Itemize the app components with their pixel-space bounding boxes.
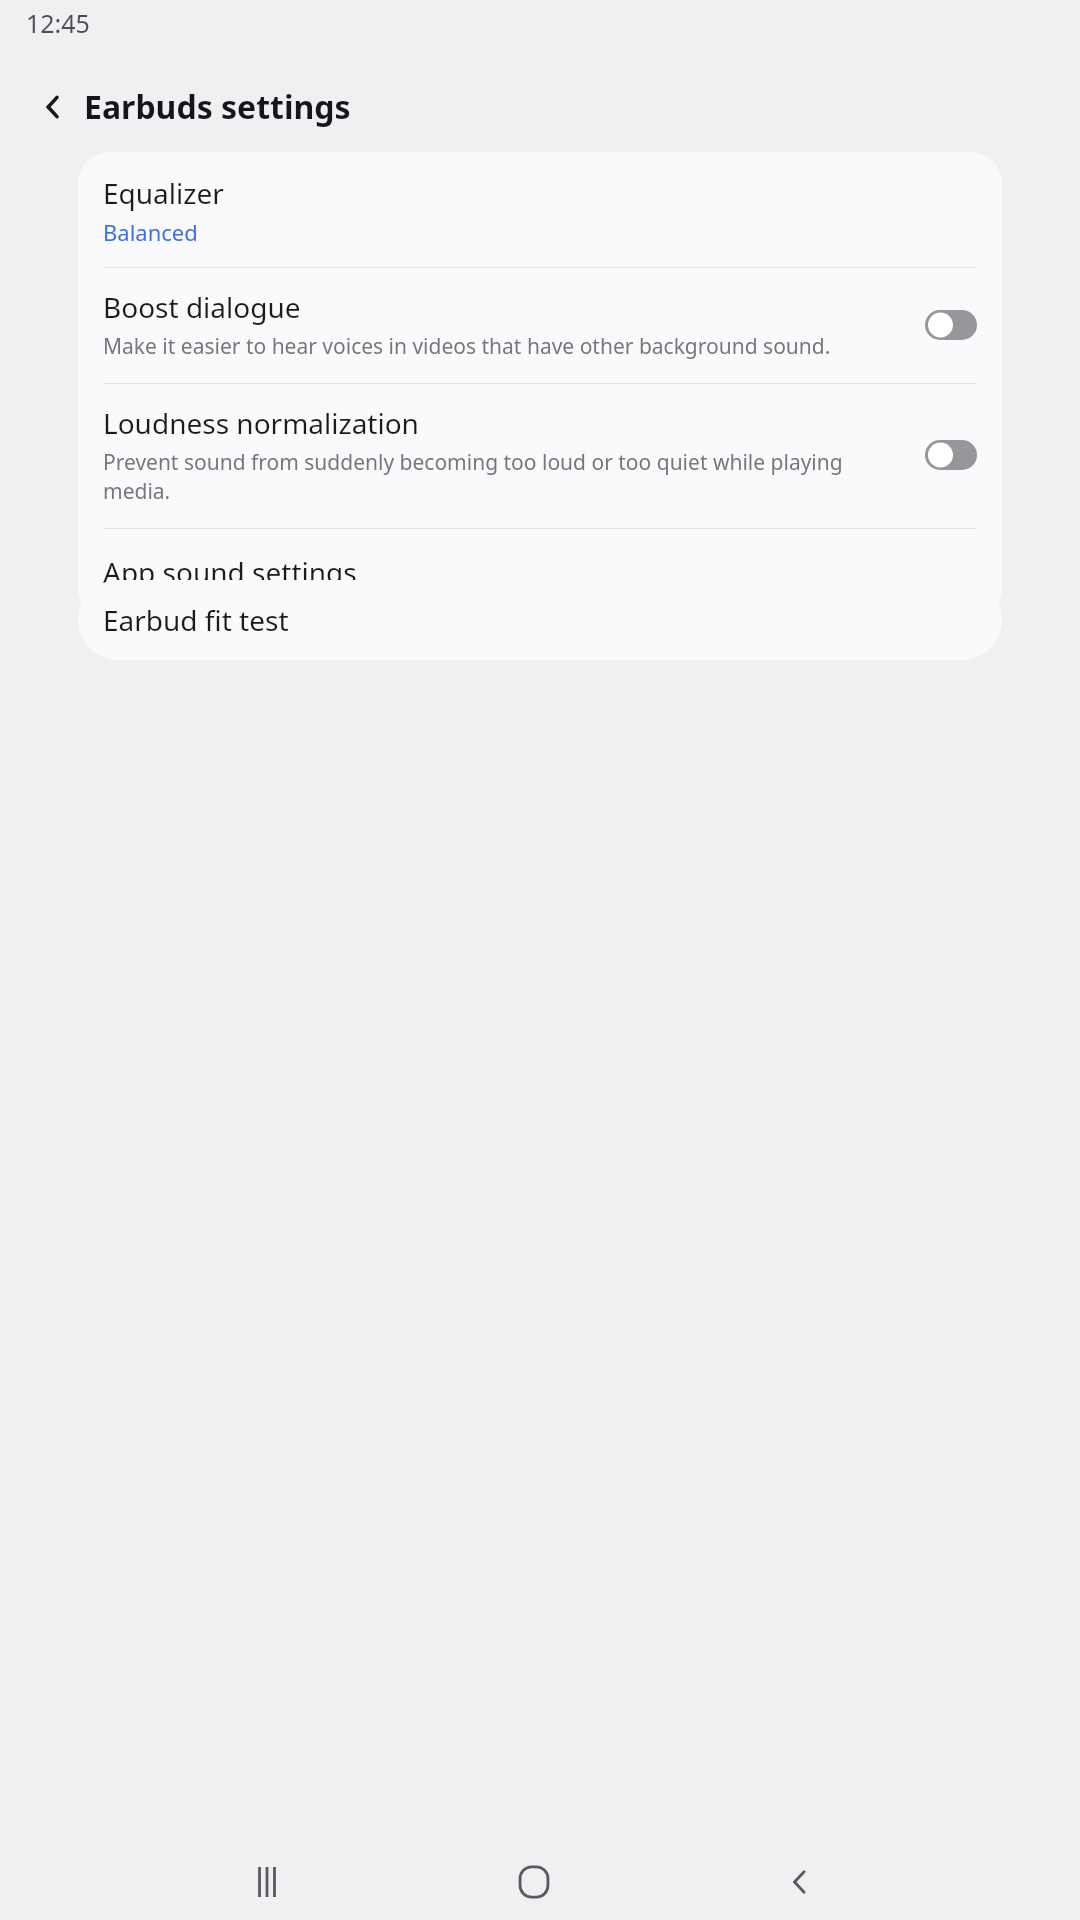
button[interactable]: Toggle (925, 440, 977, 470)
staticText: Make it easier to hear voices in videos … (103, 332, 831, 361)
staticText: App sound settings (103, 553, 357, 591)
button[interactable]: Back (18, 72, 88, 142)
staticText: Loudness normalization (103, 404, 419, 442)
staticText: Balanced (103, 217, 198, 247)
staticText: Prevent sound from suddenly becoming too… (103, 448, 911, 506)
staticText: Earbud fit test (103, 601, 289, 639)
staticText: Boost dialogue (103, 288, 301, 326)
staticText: Equalizer (103, 174, 224, 212)
button[interactable]: Boost dialogue (78, 268, 1002, 383)
staticText: 12:45 (26, 6, 90, 40)
button[interactable]: Toggle (925, 310, 977, 340)
staticText: Earbuds settings (84, 85, 351, 129)
button[interactable]: App sound settings (78, 529, 1002, 621)
button[interactable]: Home (494, 1842, 574, 1920)
button[interactable]: Earbud fit test (78, 580, 1002, 660)
button[interactable]: Recents (227, 1842, 307, 1920)
button[interactable]: Loudness normalization (78, 384, 1002, 528)
button[interactable]: Back (760, 1842, 840, 1920)
button[interactable]: Equalizer (78, 152, 1002, 267)
